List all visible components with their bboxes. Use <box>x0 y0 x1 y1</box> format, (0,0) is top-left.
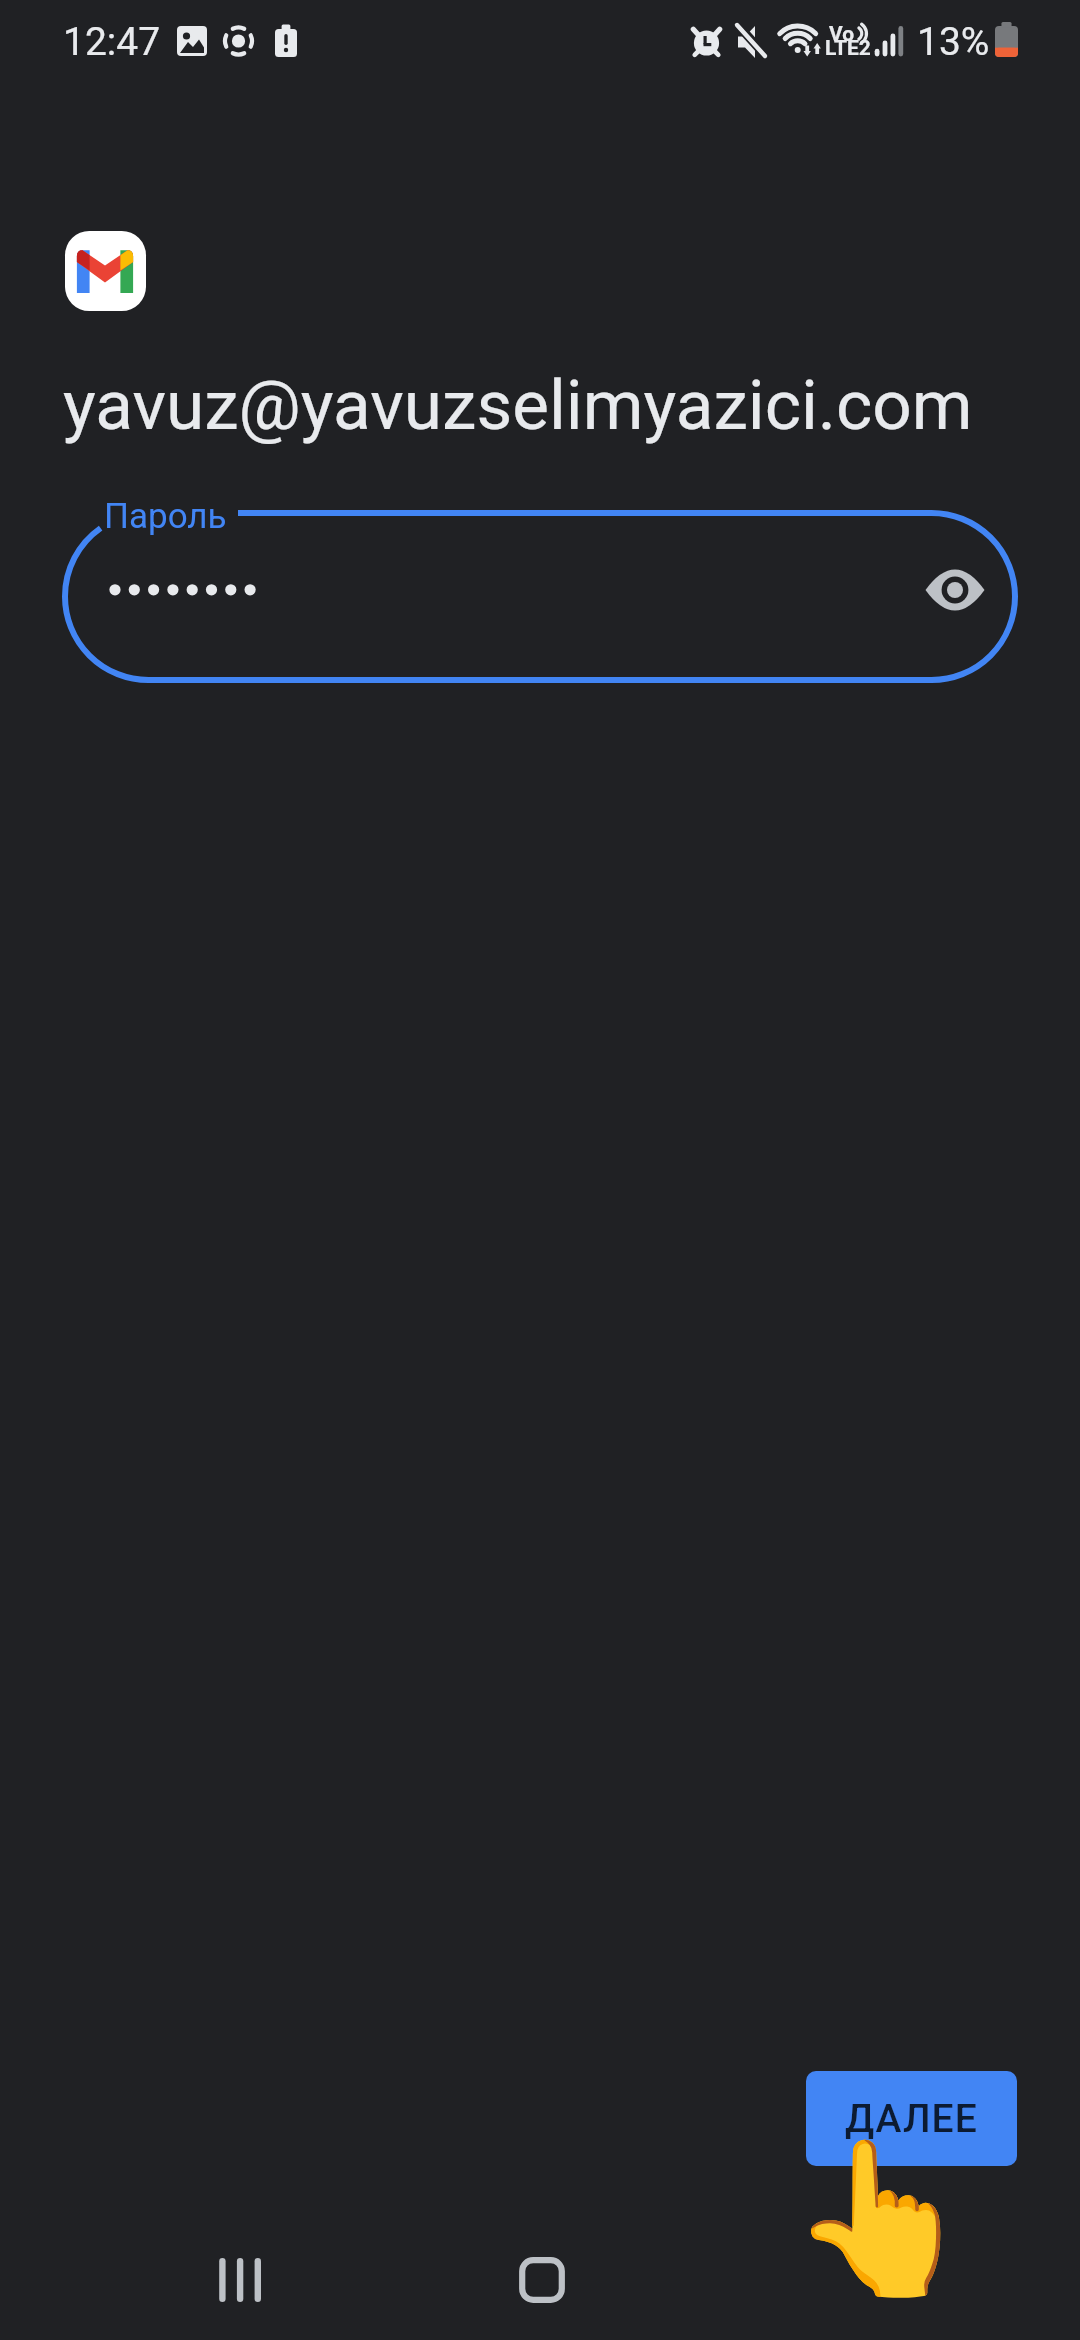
staticText: 👆 <box>788 2131 975 2307</box>
staticText: LTE2 <box>825 36 871 61</box>
staticText: Vo <box>829 22 855 47</box>
button[interactable]: Home <box>484 2228 600 2332</box>
button[interactable]: Show password <box>910 545 1000 635</box>
button[interactable]: Back <box>825 2220 941 2324</box>
staticText: Пароль <box>104 496 227 537</box>
button[interactable]: Recent apps <box>182 2228 298 2332</box>
button[interactable]: ДАЛЕЕ <box>806 2071 1017 2166</box>
button[interactable]: Пароль <box>62 510 1018 683</box>
staticText: yavuz@yavuzselimyazici.com <box>63 365 973 446</box>
staticText: ДАЛЕЕ <box>845 2096 978 2142</box>
staticText: 13% <box>917 19 990 65</box>
staticText: 12:47 <box>63 19 161 65</box>
